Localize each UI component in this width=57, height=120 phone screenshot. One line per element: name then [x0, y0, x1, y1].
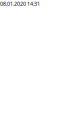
staticText: 08.01.2020 14:31: [0, 0, 40, 7]
